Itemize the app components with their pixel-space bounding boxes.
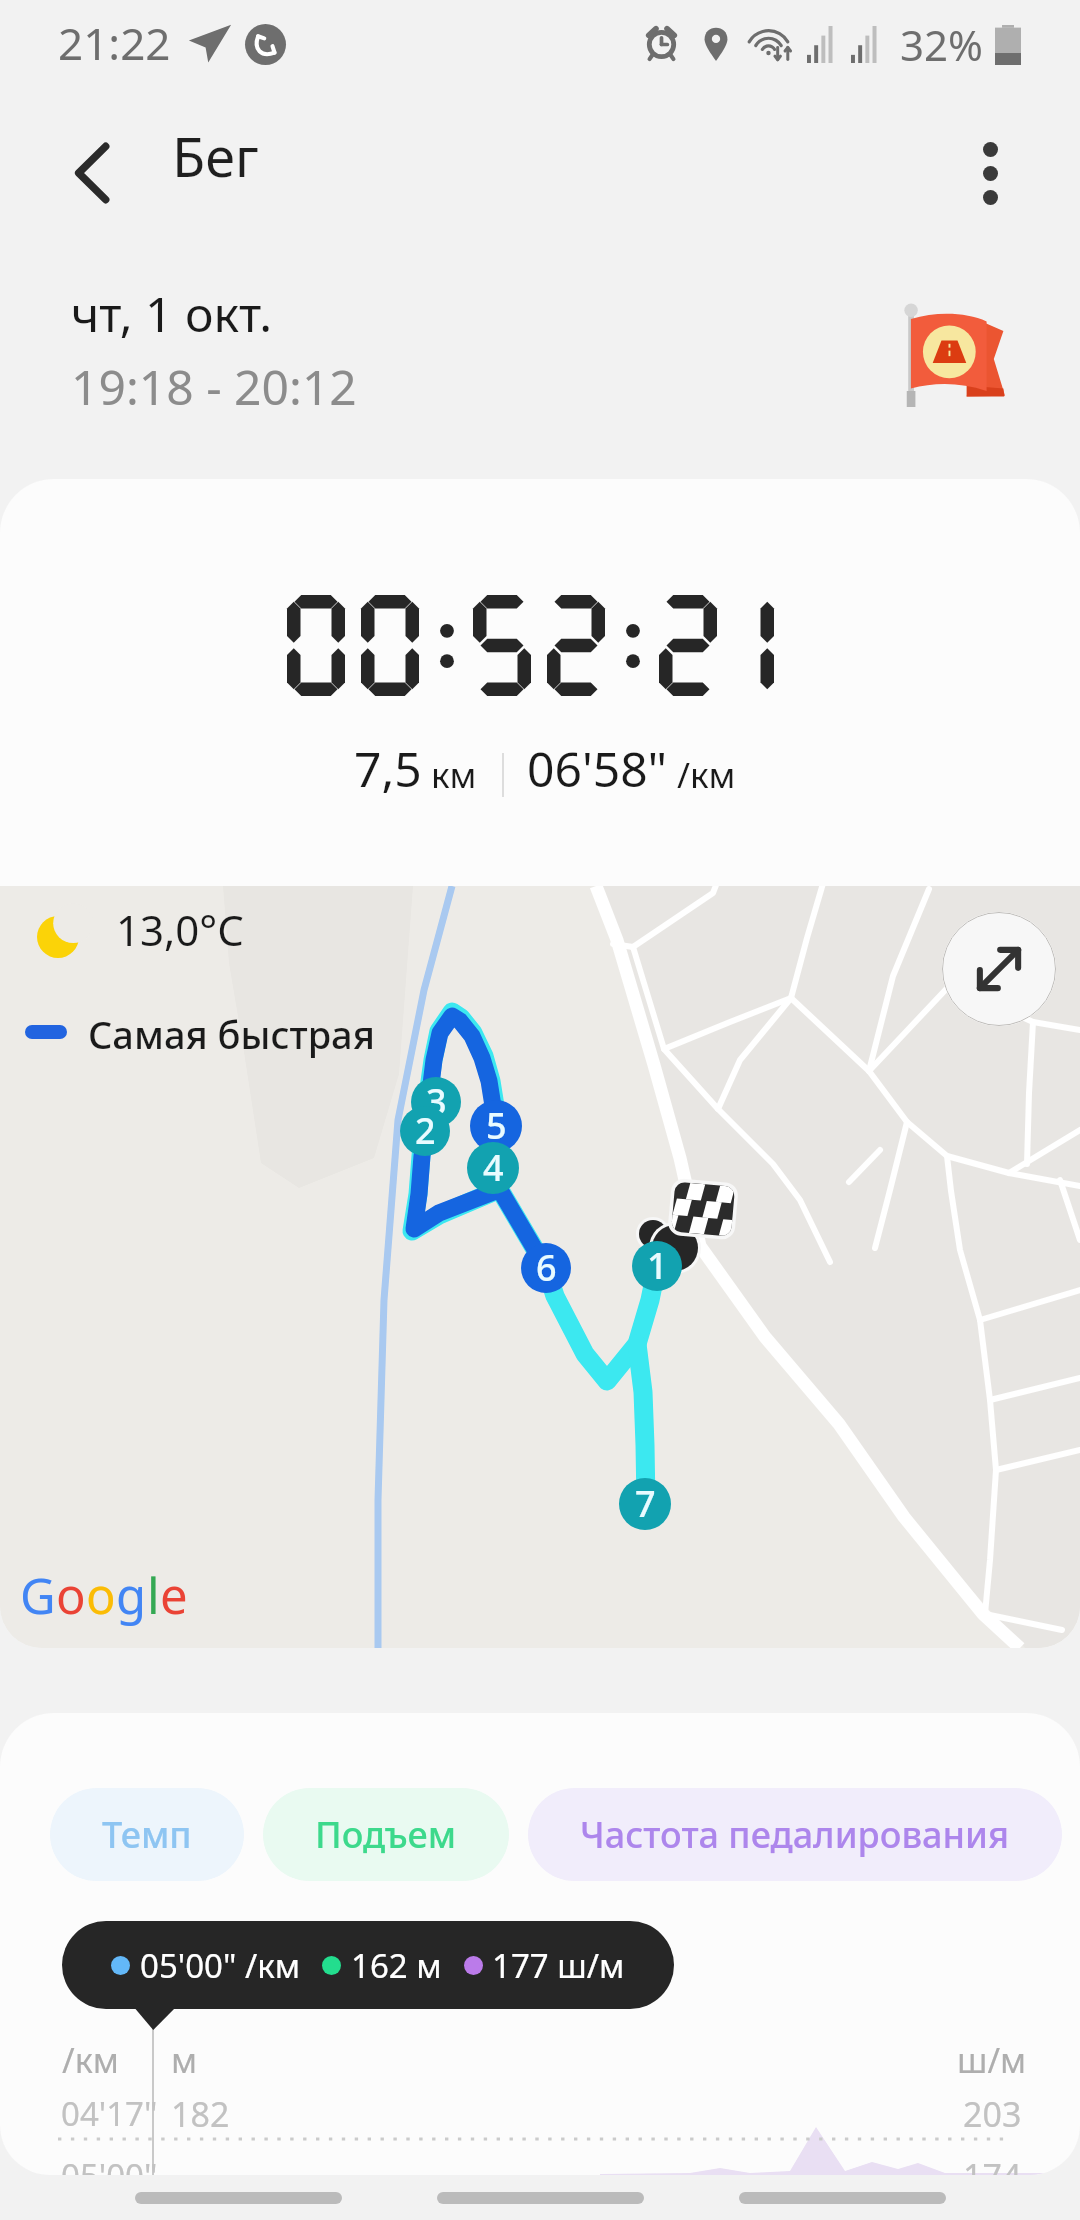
button[interactable]: 5 (470, 1100, 522, 1152)
button[interactable]: Back (739, 2192, 946, 2204)
staticText: /км (62, 2037, 119, 2083)
staticText: Бег (172, 119, 259, 193)
button[interactable]: Expand map (942, 912, 1056, 1026)
button[interactable]: 1 (632, 1241, 682, 1291)
staticText: 05'00" (61, 2153, 158, 2175)
staticText: e (160, 1562, 188, 1629)
staticText: 05'00" /км (140, 1943, 301, 1988)
staticText: 182 (171, 2091, 230, 2137)
staticText: 1 (647, 1241, 668, 1290)
button[interactable]: Темп (50, 1788, 244, 1881)
staticText: o (56, 1562, 86, 1629)
button[interactable]: 2 (400, 1106, 450, 1156)
staticText: o (86, 1562, 116, 1629)
staticText: км (431, 751, 477, 799)
button[interactable]: Подъем (263, 1788, 509, 1881)
button[interactable]: Recents (135, 2192, 342, 2204)
button[interactable]: Home (437, 2192, 644, 2204)
staticText: 04'17" (61, 2091, 158, 2136)
staticText: 2 (415, 1106, 436, 1155)
button[interactable]: More options (938, 121, 1042, 225)
staticText: 13,0°C (116, 901, 244, 958)
staticText: G (20, 1562, 56, 1629)
staticText: Частота педалирования (580, 1810, 1010, 1859)
staticText: 06'58" (527, 736, 668, 801)
button[interactable]: Back (38, 119, 146, 227)
button[interactable]: Частота педалирования (528, 1788, 1062, 1881)
button[interactable]: 6 (521, 1243, 571, 1293)
staticText: м (171, 2037, 198, 2083)
staticText: 21:22 (58, 13, 171, 73)
button[interactable]: 4 (467, 1142, 519, 1194)
staticText: Темп (102, 1810, 192, 1859)
staticText: 7 (635, 1479, 656, 1528)
staticText: Самая быстрая (88, 1008, 375, 1060)
staticText: /км (677, 751, 736, 799)
staticText: чт, 1 окт. (71, 281, 273, 346)
staticText: l (147, 1562, 160, 1629)
staticText: 32% (900, 16, 983, 73)
staticText: ш/м (957, 2037, 1027, 2083)
staticText: 177 ш/м (492, 1943, 625, 1988)
button[interactable]: 7 (619, 1478, 671, 1530)
staticText: 19:18 - 20:12 (71, 354, 357, 419)
staticText: 174 (963, 2153, 1022, 2175)
staticText: g (116, 1562, 147, 1629)
staticText: 203 (963, 2091, 1022, 2137)
button[interactable]: 3 (411, 1077, 461, 1127)
staticText: Подъем (315, 1810, 457, 1859)
staticText: 4 (483, 1143, 504, 1192)
staticText: 5 (486, 1101, 507, 1150)
staticText: 3 (426, 1077, 447, 1126)
staticText: 162 м (351, 1943, 442, 1988)
staticText: 7,5 (354, 736, 422, 801)
staticText: 6 (536, 1243, 557, 1292)
